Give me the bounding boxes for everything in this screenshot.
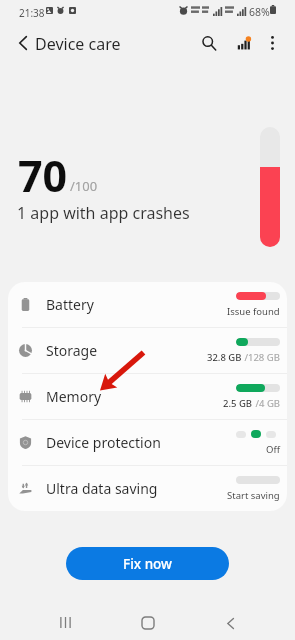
staticText: /100 [70,177,98,195]
button[interactable]: More options [254,25,290,61]
staticText: Device care [35,33,121,55]
staticText: Ultra data saving [46,479,158,498]
staticText: Battery [46,295,94,314]
button[interactable]: Home [128,607,168,639]
staticText: Memory [46,387,102,406]
button[interactable]: Back [210,607,250,639]
staticText: 1 app with app crashes [17,202,190,224]
button[interactable]: Memory [8,374,287,419]
button[interactable]: Usage statistics [225,25,261,61]
staticText: 2.5 GB [223,397,253,410]
button[interactable]: Fix now [66,547,229,580]
staticText: Storage [46,341,98,360]
staticText: Issue found [227,305,280,318]
staticText: 32.8 GB [207,351,242,364]
staticText: 70 [18,146,68,205]
staticText: Start saving [227,489,280,502]
staticText: Fix now [123,555,172,573]
button[interactable]: Ultra data saving [8,466,287,511]
button[interactable]: Battery [8,282,287,327]
button[interactable]: Search [191,25,227,61]
button[interactable]: Device protection [8,420,287,465]
staticText: Device protection [46,433,161,452]
staticText: 68% [249,5,270,19]
button[interactable]: Storage [8,328,287,373]
staticText: /4 GB [253,397,280,410]
staticText: /128 GB [242,351,280,364]
staticText: 21:38 [19,6,45,20]
button[interactable]: Recent apps [45,606,85,638]
button[interactable]: Navigate up [5,25,41,61]
staticText: Off [266,443,280,456]
